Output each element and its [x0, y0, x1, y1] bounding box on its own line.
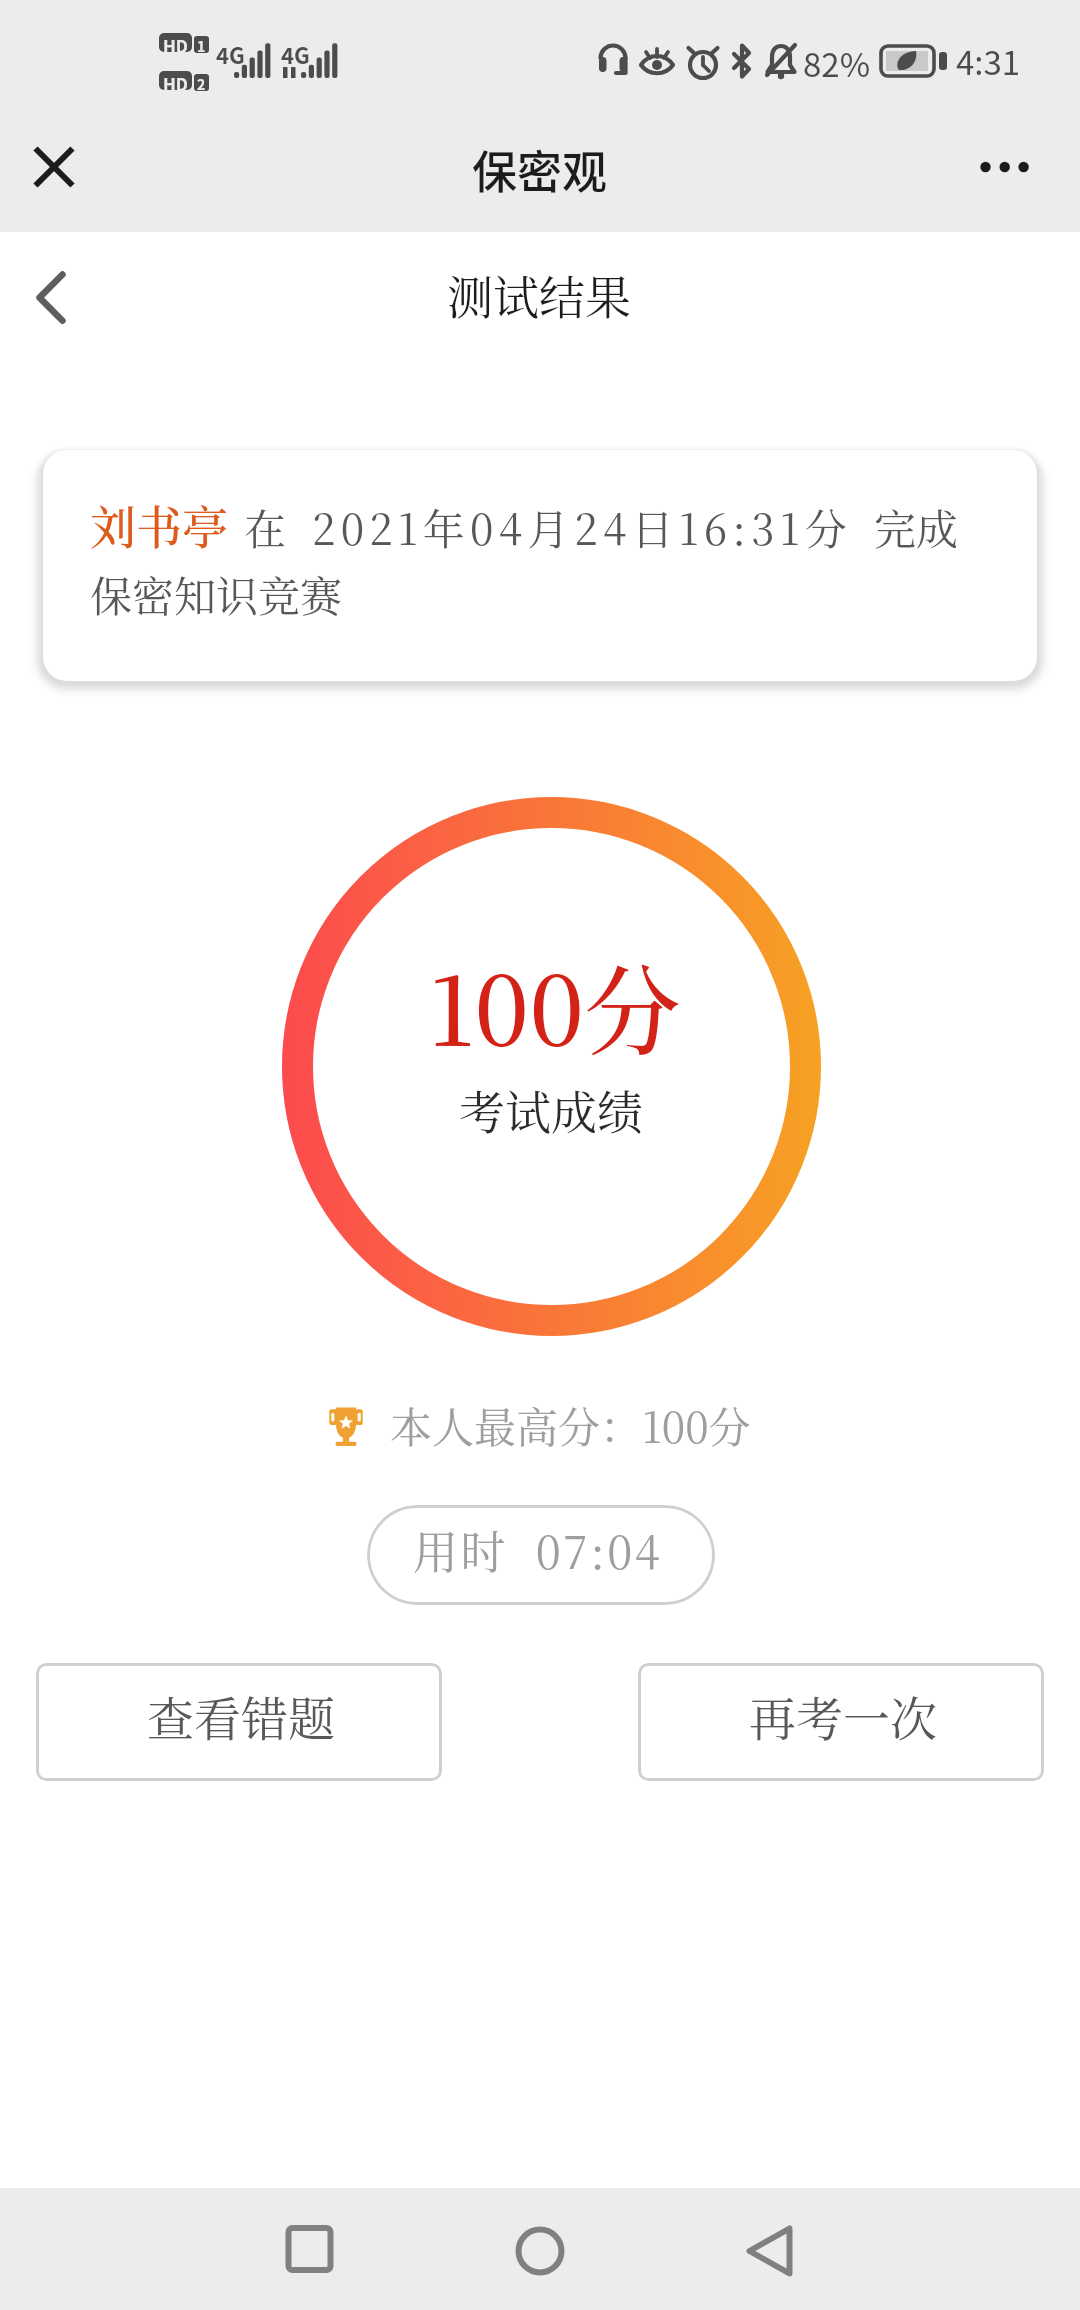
staticText: 保密观 — [472, 137, 608, 202]
button[interactable]: Back — [731, 2213, 806, 2288]
staticText: 刘书亭 — [90, 491, 228, 557]
staticText: 考试成绩 — [459, 1076, 643, 1142]
staticText: 查看错题 — [147, 1682, 335, 1750]
staticText: HD — [163, 71, 189, 90]
staticText: 4G — [281, 38, 310, 70]
button[interactable]: 刘书亭 — [43, 450, 1037, 681]
staticText: 测试结果 — [447, 261, 631, 327]
staticText: 4:31 — [956, 37, 1021, 85]
staticText: HD — [163, 33, 189, 52]
staticText: 保密知识竞赛 — [90, 564, 343, 624]
button[interactable]: 用时 07:04 — [367, 1505, 715, 1605]
button[interactable]: Close — [16, 129, 92, 205]
staticText: 完成 — [874, 497, 959, 557]
button[interactable]: 再考一次 — [638, 1663, 1044, 1781]
staticText: 82% — [803, 39, 871, 87]
staticText: 100分 — [429, 936, 681, 1074]
staticText: 本人最高分：100分 — [390, 1395, 751, 1455]
staticText: 2021年04月24日16:31分 — [312, 497, 853, 557]
button[interactable]: More options — [965, 129, 1045, 209]
button[interactable]: Back — [16, 252, 92, 328]
staticText: 1 — [197, 36, 206, 53]
staticText: 4G — [216, 38, 245, 70]
staticText: 再考一次 — [749, 1682, 937, 1750]
button[interactable]: Recent apps — [271, 2213, 346, 2288]
button[interactable]: 查看错题 — [36, 1663, 442, 1781]
button[interactable]: Home — [502, 2213, 577, 2288]
staticText: 用时 07:04 — [413, 1517, 663, 1582]
staticText: 在 — [244, 497, 287, 557]
staticText: 2 — [197, 74, 206, 91]
